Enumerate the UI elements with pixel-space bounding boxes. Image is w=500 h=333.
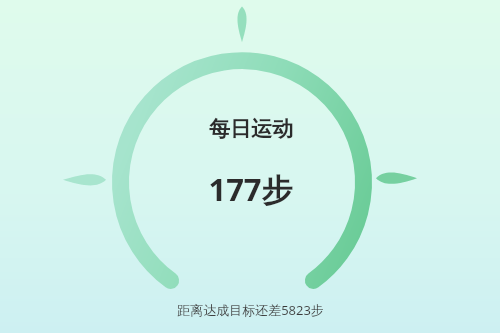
button[interactable]: Daily activity progress ring	[0, 0, 500, 333]
staticText: 距离达成目标还差5823步	[177, 301, 324, 319]
staticText: 177步	[208, 168, 293, 210]
staticText: 每日运动	[209, 116, 293, 142]
